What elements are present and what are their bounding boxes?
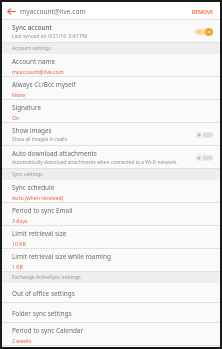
staticText: myaccount@live.com [12, 68, 64, 75]
staticText: On [12, 114, 20, 121]
staticText: Account name [12, 57, 56, 66]
staticText: myaccount@live.com [20, 7, 186, 16]
button[interactable]: Account name [2, 54, 220, 77]
staticText: Auto download attachments [12, 149, 97, 158]
staticText: 1 KB [12, 263, 23, 270]
staticText: 3 days [12, 217, 28, 224]
button[interactable]: Period to sync Calendar [2, 323, 220, 346]
staticText: Last synced on 9/21/16 5:47 PM [12, 33, 88, 40]
button[interactable]: Sync schedule [2, 180, 220, 203]
staticText: REMOVE [192, 8, 214, 15]
staticText: Exchange ActiveSync settings [12, 274, 81, 281]
button[interactable]: Folder sync settings [2, 303, 220, 323]
staticText: Period to sync Calendar [12, 326, 84, 335]
button[interactable]: Always Cc/Bcc myself [2, 77, 220, 100]
button[interactable]: Toggle on [194, 25, 214, 39]
button[interactable]: Back [2, 2, 20, 20]
staticText: Sync schedule [12, 183, 55, 192]
staticText: Account settings [12, 45, 51, 52]
button[interactable]: Toggle off [194, 151, 214, 165]
button[interactable]: Out of office settings [2, 283, 220, 303]
staticText: Limit retrieval size while roaming [12, 252, 111, 261]
button[interactable]: Show images [2, 123, 220, 146]
button[interactable]: Limit retrieval size [2, 226, 220, 249]
staticText: Limit retrieval size [12, 229, 67, 238]
staticText: Sync account [12, 23, 52, 32]
button[interactable]: REMOVE [186, 4, 220, 19]
button[interactable]: Limit retrieval size while roaming [2, 249, 220, 272]
button[interactable]: Toggle off [194, 128, 214, 142]
staticText: Show all images in mails. [12, 136, 69, 143]
staticText: 10 KB [12, 240, 26, 247]
button[interactable]: Period to sync Email [2, 203, 220, 226]
button[interactable]: Signature [2, 100, 220, 123]
staticText: Out of office settings [12, 289, 75, 298]
staticText: Sync settings [12, 171, 43, 178]
staticText: Auto (when received) [12, 194, 64, 201]
staticText: Always Cc/Bcc myself [12, 80, 76, 89]
staticText: 2 weeks [12, 337, 32, 344]
staticText: Folder sync settings [12, 309, 72, 318]
staticText: Signature [12, 103, 41, 112]
button[interactable]: Auto download attachments [2, 146, 220, 169]
staticText: None [12, 91, 26, 98]
staticText: Show images [12, 126, 52, 135]
staticText: Period to sync Email [12, 206, 73, 215]
staticText: Automatically download attachments when … [12, 159, 178, 166]
button[interactable]: Sync account [2, 20, 220, 43]
